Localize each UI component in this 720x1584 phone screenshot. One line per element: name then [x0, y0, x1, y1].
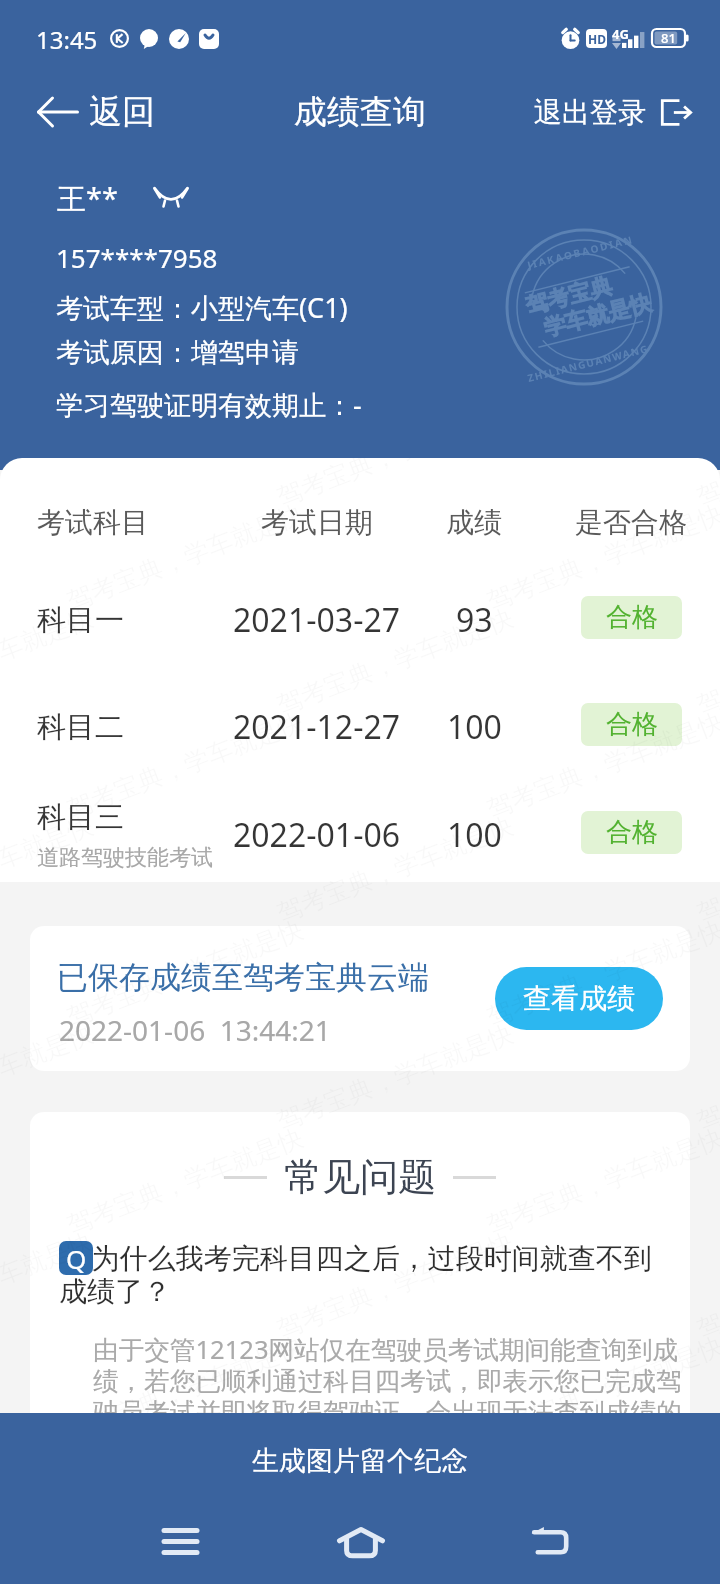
- button[interactable]: 查看成绩: [495, 967, 663, 1030]
- button[interactable]: 退出登录: [520, 95, 720, 130]
- staticText: 2022-01-06 13:44:21: [59, 1011, 331, 1049]
- staticText: 驾考宝典，学车就是快: [63, 1538, 307, 1584]
- staticText: 驾考宝典，学车就是快: [483, 914, 720, 1033]
- staticText: 2022-01-06: [233, 813, 401, 857]
- staticText: 科目三: [37, 799, 124, 836]
- staticText: 驾考宝典，学车就是快: [693, 458, 720, 513]
- staticText: 已保存成绩至驾考宝典云端: [57, 958, 429, 997]
- staticText: HD: [588, 31, 606, 47]
- staticText: 常见问题: [284, 1153, 436, 1201]
- staticText: 合格: [606, 708, 658, 741]
- staticText: 道路驾驶技能考试: [37, 844, 213, 872]
- staticText: 考试日期: [261, 505, 373, 540]
- staticText: 13:45: [36, 23, 98, 56]
- staticText: 驾考宝典，学车就是快: [0, 1018, 97, 1137]
- staticText: 由于交管12123网站仅在驾驶员考试期间能查询到成绩，若您已顺利通过科目四考试，…: [93, 1332, 686, 1429]
- staticText: 驾考宝典，学车就是快: [0, 1226, 97, 1345]
- staticText: 驾考宝典，学车就是快: [273, 1434, 517, 1553]
- staticText: 驾考宝典，学车就是快: [273, 810, 517, 929]
- staticText: 驾考宝典，学车就是快: [483, 1122, 720, 1241]
- staticText: 驾考宝典，学车就是快: [483, 498, 720, 617]
- staticText: 驾考宝典，学车就是快: [693, 810, 720, 929]
- staticText: 合格: [606, 601, 658, 634]
- staticText: 合格: [606, 816, 658, 849]
- staticText: 科目一: [37, 602, 124, 639]
- staticText: 驾考宝典，学车就是快: [273, 458, 517, 513]
- staticText: 驾考宝典，学车就是快: [273, 602, 517, 721]
- button[interactable]: Show details: [149, 176, 193, 220]
- staticText: 2021-12-27: [233, 705, 401, 749]
- staticText: 驾考宝典，学车就是快: [0, 810, 97, 929]
- staticText: 学车就是快: [541, 289, 654, 343]
- staticText: 93: [456, 598, 493, 642]
- staticText: 退出登录: [534, 95, 646, 130]
- staticText: 81: [661, 29, 676, 47]
- button[interactable]: Recent apps: [120, 1509, 241, 1584]
- staticText: 考试车型：小型汽车(C1): [56, 289, 348, 326]
- staticText: 驾考宝典，学车就是快: [483, 706, 720, 825]
- staticText: 生成图片留个纪念: [252, 1444, 468, 1478]
- staticText: 2021-03-27: [233, 598, 401, 642]
- staticText: 返回: [89, 91, 155, 133]
- button[interactable]: 生成图片留个纪念: [0, 1413, 720, 1509]
- staticText: 驾考宝典，学车就是快: [0, 458, 97, 513]
- button[interactable]: 科目一: [0, 566, 720, 674]
- button[interactable]: Back: [489, 1509, 610, 1584]
- staticText: JIAKAOBAODIAN: [526, 232, 635, 272]
- staticText: 科目二: [37, 709, 124, 746]
- staticText: 4G: [612, 25, 629, 43]
- staticText: 驾考宝典，学车就是快: [63, 914, 307, 1033]
- staticText: 驾考宝典，学车就是快: [63, 1122, 307, 1241]
- staticText: 驾考宝典，学车就是快: [63, 1330, 307, 1449]
- staticText: 成绩查询: [294, 91, 426, 133]
- staticText: 驾考宝典，学车就是快: [483, 1330, 720, 1449]
- staticText: 驾考宝典，学车就是快: [0, 602, 97, 721]
- staticText: 成绩: [446, 505, 502, 540]
- staticText: ZHILIANGUANWANG: [526, 341, 651, 385]
- staticText: 是否合格: [575, 505, 687, 540]
- staticText: 驾考宝典，学车就是快: [273, 1226, 517, 1345]
- button[interactable]: 科目三: [0, 781, 720, 882]
- button[interactable]: 返回: [0, 91, 169, 133]
- staticText: 考试原因：增驾申请: [56, 336, 299, 370]
- staticText: 王**: [57, 178, 118, 218]
- staticText: 100: [447, 705, 502, 749]
- staticText: 学习驾驶证明有效期止：-: [56, 386, 362, 423]
- staticText: 驾考宝典，学车就是快: [273, 1018, 517, 1137]
- staticText: 驾考宝典，学车就是快: [63, 706, 307, 825]
- staticText: 驾考宝典，学车就是快: [63, 498, 307, 617]
- staticText: 驾考宝典: [523, 272, 615, 321]
- staticText: Q: [66, 1241, 87, 1275]
- staticText: 查看成绩: [523, 981, 635, 1016]
- button[interactable]: 科目二: [0, 673, 720, 781]
- button[interactable]: Home: [300, 1509, 421, 1584]
- staticText: 为什么我考完科目四之后，过段时间就查不到成绩了？: [59, 1238, 656, 1309]
- staticText: 157****7958: [56, 240, 218, 275]
- staticText: 考试科目: [37, 505, 149, 540]
- staticText: 驾考宝典，学车就是快: [483, 1538, 720, 1584]
- staticText: 100: [447, 813, 502, 857]
